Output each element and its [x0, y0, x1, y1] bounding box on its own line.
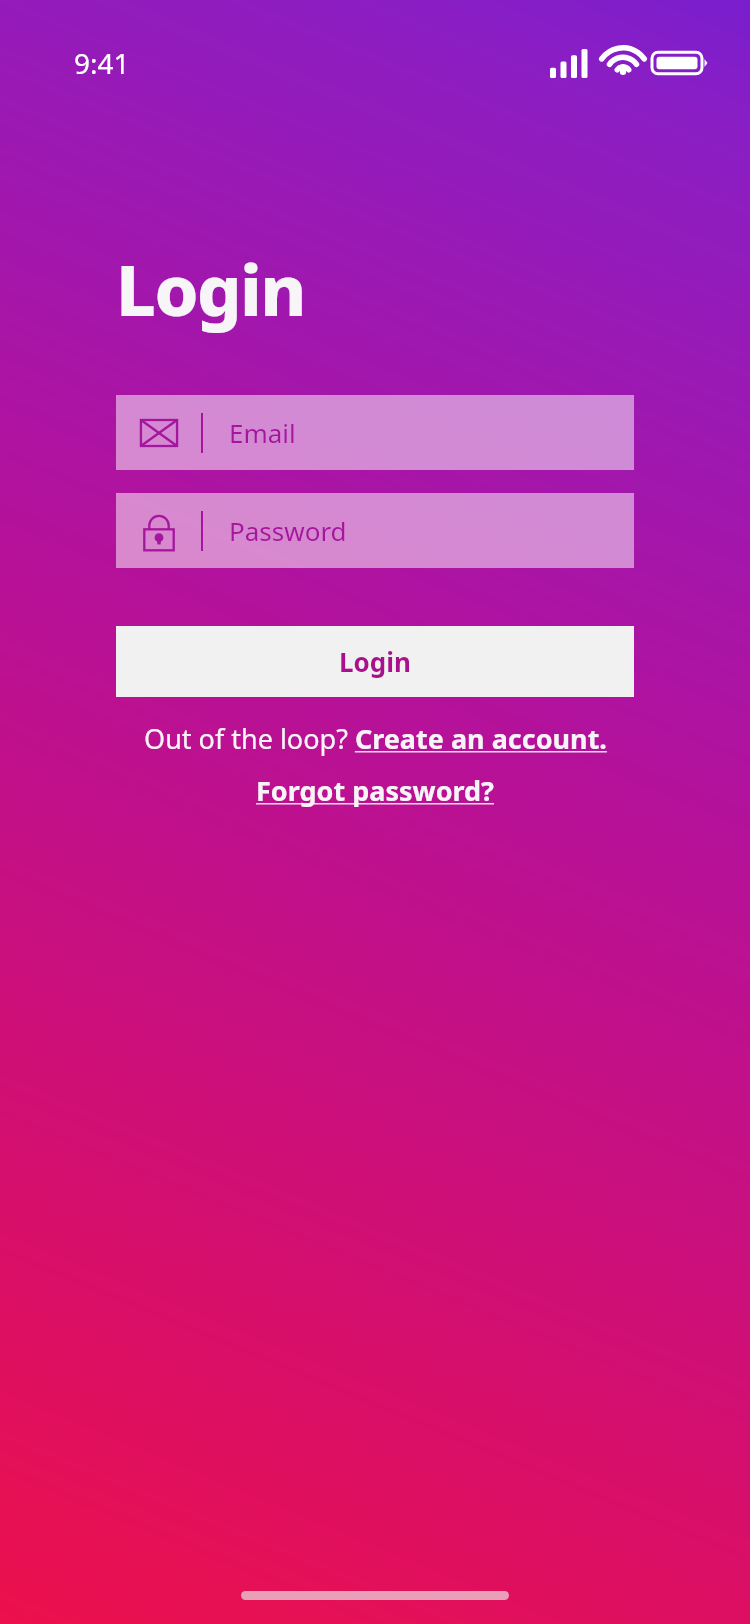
staticText: Email: [229, 415, 296, 450]
button[interactable]: Login: [116, 626, 634, 697]
button[interactable]: Password: [116, 493, 634, 568]
staticText: Out of the loop? Create an account.: [144, 720, 607, 757]
staticText: Password: [229, 513, 347, 548]
button[interactable]: Out of the loop? Create an account.: [0, 720, 750, 757]
staticText: Login: [116, 241, 305, 336]
button[interactable]: Email: [116, 395, 634, 470]
staticText: 9:41: [74, 44, 130, 82]
button[interactable]: Forgot password?: [0, 772, 750, 809]
staticText: Login: [339, 644, 411, 679]
staticText: Forgot password?: [256, 772, 494, 809]
